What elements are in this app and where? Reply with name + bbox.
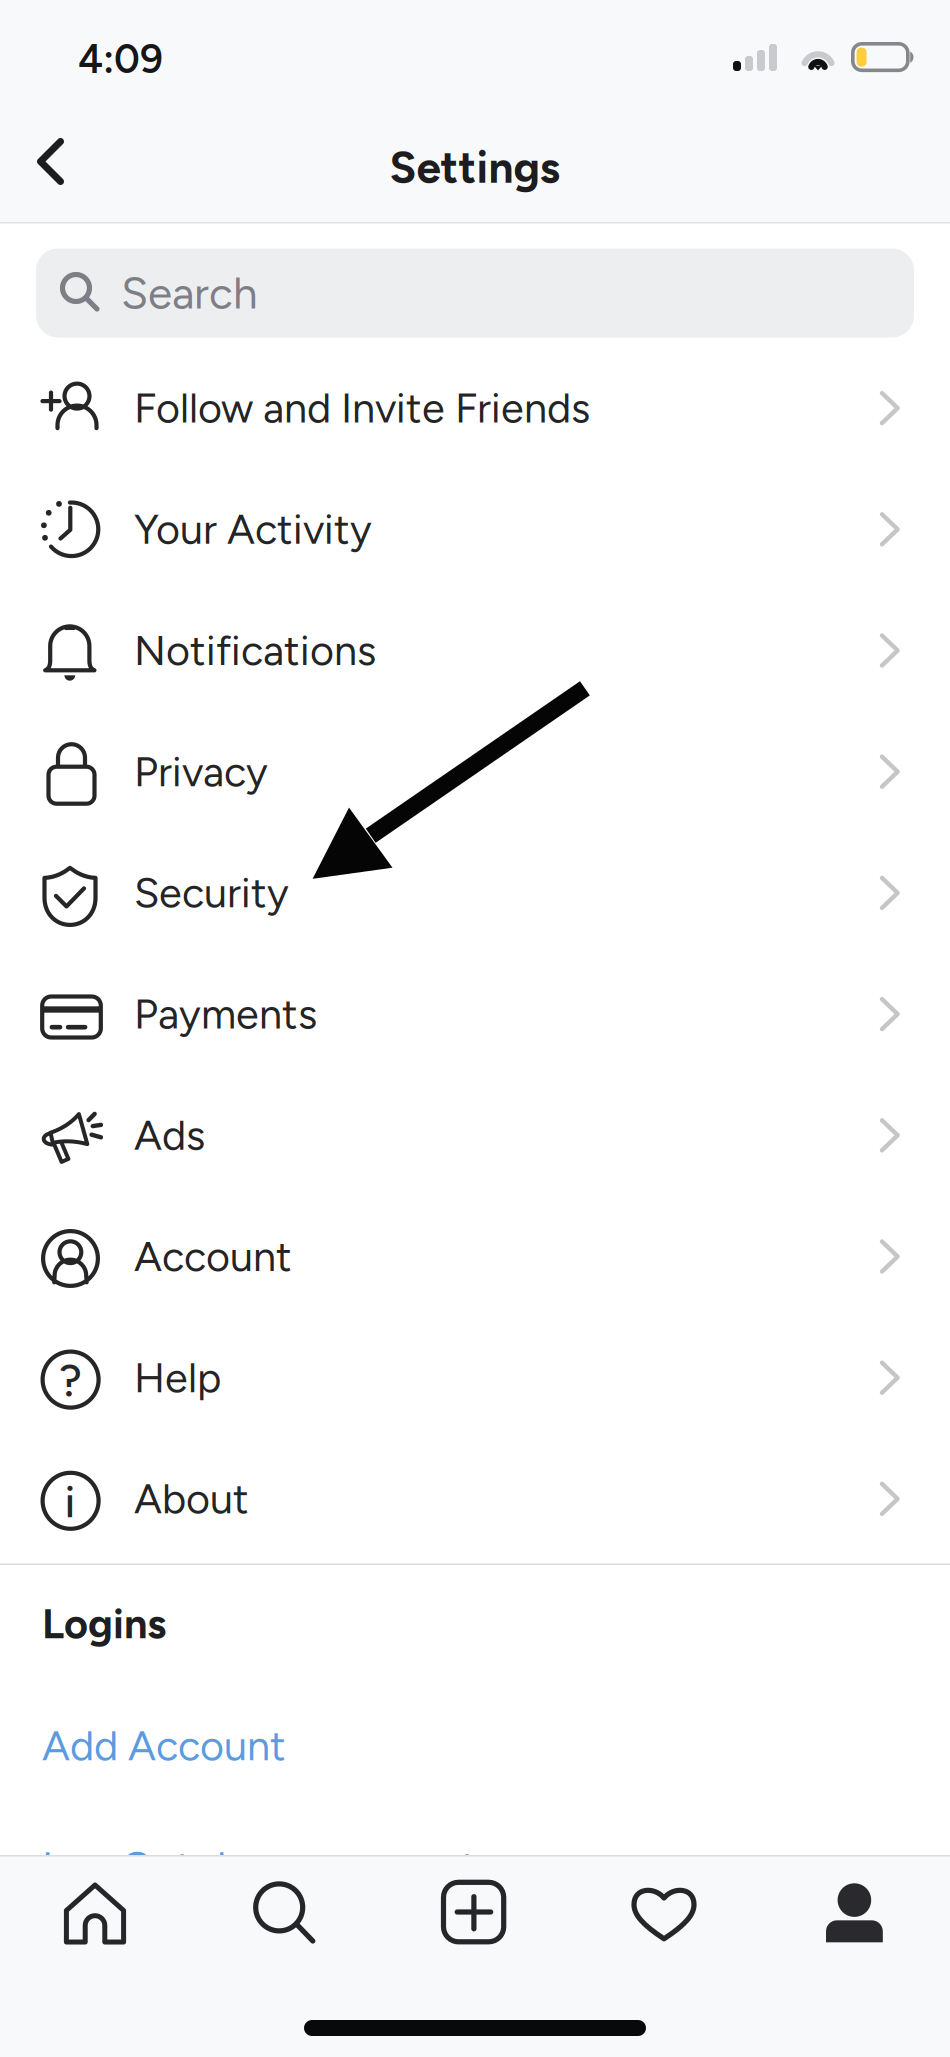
staticText: Notifications: [134, 626, 376, 675]
staticText: Your Activity: [134, 504, 372, 554]
button[interactable]: Ads: [0, 1079, 950, 1200]
button[interactable]: i: [0, 1442, 950, 1563]
staticText: Help: [134, 1353, 221, 1402]
button[interactable]: Back: [4, 107, 100, 217]
button[interactable]: New Post: [380, 1880, 570, 1944]
staticText: Privacy: [134, 747, 268, 796]
staticText: ?: [59, 1353, 82, 1407]
button[interactable]: Home: [0, 1880, 190, 1944]
button[interactable]: Notifications: [0, 594, 950, 715]
button[interactable]: Security: [0, 836, 950, 957]
button[interactable]: Add Account: [0, 1686, 950, 1802]
staticText: About: [134, 1474, 249, 1524]
button[interactable]: Search: [190, 1880, 380, 1944]
staticText: i: [64, 1474, 75, 1529]
button[interactable]: Account: [0, 1200, 950, 1321]
staticText: Add Account: [42, 1721, 286, 1771]
button[interactable]: ?: [0, 1321, 950, 1442]
staticText: Account: [134, 1232, 292, 1281]
button[interactable]: Your Activity: [0, 473, 950, 594]
staticText: Settings: [389, 141, 560, 194]
button[interactable]: Payments: [0, 957, 950, 1079]
staticText: Payments: [134, 989, 317, 1039]
button[interactable]: Activity: [570, 1880, 760, 1944]
button[interactable]: Log Out demo_account: [0, 1801, 950, 1917]
button[interactable]: Privacy: [0, 715, 950, 836]
staticText: Ads: [134, 1110, 205, 1160]
button[interactable]: Follow and Invite Friends: [0, 351, 950, 473]
staticText: Search: [121, 267, 258, 319]
staticText: Follow and Invite Friends: [134, 383, 590, 433]
staticText: 4:09: [78, 35, 163, 83]
button[interactable]: Profile: [760, 1880, 950, 1944]
staticText: Log Out demo_account: [42, 1842, 477, 1892]
staticText: Security: [134, 868, 289, 918]
staticText: Logins: [42, 1599, 166, 1649]
